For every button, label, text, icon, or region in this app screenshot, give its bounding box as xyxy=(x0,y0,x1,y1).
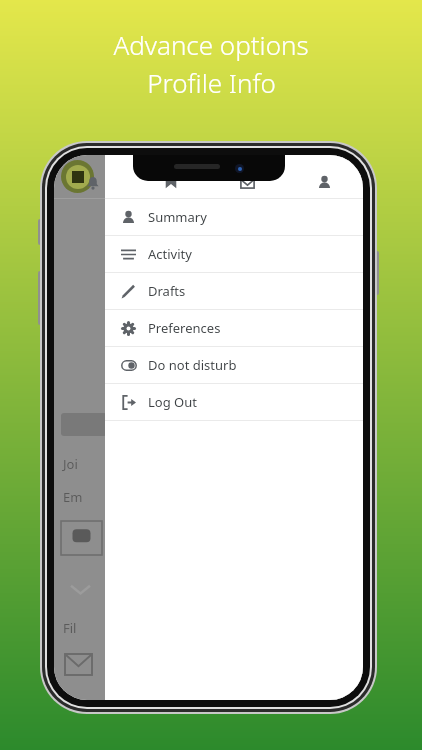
button[interactable]: Summary xyxy=(105,199,363,235)
button[interactable]: Bookmarks xyxy=(132,155,209,198)
button[interactable]: Profile xyxy=(286,155,363,198)
staticText: Advance options xyxy=(113,27,309,62)
staticText: Profile Info xyxy=(147,65,276,100)
button[interactable]: Log Out xyxy=(105,384,363,420)
button[interactable]: Do not disturb xyxy=(105,347,363,383)
staticText: Em xyxy=(63,488,83,506)
staticText: Summary xyxy=(148,208,207,226)
staticText: Joi xyxy=(63,455,78,473)
button[interactable]: Activity xyxy=(105,236,363,272)
staticText: Preferences xyxy=(148,319,221,337)
staticText: Log Out xyxy=(148,393,197,411)
button[interactable]: Drafts xyxy=(105,273,363,309)
staticText: Activity xyxy=(148,245,192,263)
staticText: Fil xyxy=(63,619,77,637)
button[interactable]: Messages xyxy=(209,155,286,198)
button[interactable]: Notifications xyxy=(54,155,132,198)
staticText: Drafts xyxy=(148,282,186,300)
button[interactable]: Preferences xyxy=(105,310,363,346)
staticText: Do not disturb xyxy=(148,356,237,374)
